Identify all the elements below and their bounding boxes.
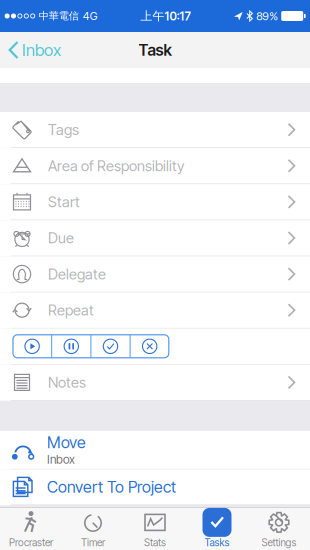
staticText: Settings bbox=[261, 536, 296, 549]
button[interactable]: Pause bbox=[52, 335, 90, 358]
button[interactable]: Move bbox=[0, 431, 310, 469]
staticText: Notes bbox=[48, 373, 86, 391]
staticText: Task bbox=[138, 40, 171, 59]
staticText: Inbox bbox=[22, 40, 61, 60]
button[interactable]: Start bbox=[13, 335, 51, 358]
staticText: Due bbox=[48, 229, 74, 247]
staticText: Timer bbox=[81, 536, 105, 549]
staticText: Move bbox=[47, 433, 86, 452]
button[interactable]: Notes bbox=[0, 365, 310, 401]
staticText: Tasks bbox=[204, 536, 229, 549]
button[interactable]: Repeat bbox=[0, 292, 310, 329]
button[interactable]: Tags bbox=[0, 112, 310, 148]
button[interactable]: Cancel bbox=[131, 335, 169, 358]
button[interactable]: Tasks bbox=[186, 508, 248, 550]
staticText: 上午10:17 bbox=[140, 9, 190, 23]
button[interactable]: Procraster bbox=[0, 508, 62, 550]
staticText: Delegate bbox=[48, 265, 106, 283]
staticText: Convert To Project bbox=[47, 477, 176, 497]
staticText: Area of Responsibility bbox=[48, 157, 184, 175]
button[interactable]: Start bbox=[0, 184, 310, 220]
button[interactable]: Stats bbox=[124, 508, 186, 550]
button[interactable]: Timer bbox=[62, 508, 124, 550]
staticText: Procraster bbox=[9, 536, 53, 549]
staticText: 89% bbox=[256, 9, 278, 23]
button[interactable]: Inbox bbox=[0, 32, 71, 68]
staticText: 4G bbox=[83, 9, 98, 23]
staticText: 中華電信 bbox=[39, 10, 79, 22]
button[interactable]: Area of Responsibility bbox=[0, 148, 310, 184]
staticText: Start bbox=[48, 193, 80, 211]
staticText: Tags bbox=[48, 121, 79, 138]
button[interactable]: Due bbox=[0, 220, 310, 256]
button[interactable]: Delegate bbox=[0, 256, 310, 292]
staticText: Inbox bbox=[47, 452, 75, 467]
staticText: Stats bbox=[144, 536, 166, 549]
staticText: Repeat bbox=[48, 301, 94, 319]
button[interactable]: Settings bbox=[248, 508, 310, 550]
button[interactable]: Convert To Project bbox=[0, 469, 310, 505]
button[interactable]: Complete bbox=[91, 335, 130, 358]
